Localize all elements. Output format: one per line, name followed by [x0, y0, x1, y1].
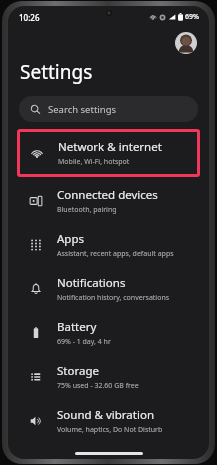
button[interactable]: Notifications — [16, 267, 201, 311]
button[interactable]: Sound & vibration — [16, 399, 201, 443]
staticText: Battery — [57, 319, 97, 335]
staticText: Search settings — [48, 103, 117, 116]
button[interactable]: Network & internet — [17, 129, 200, 177]
staticText: 75% used - 32.60 GB free — [57, 381, 139, 391]
staticText: Network & internet — [58, 139, 162, 155]
staticText: Notification history, conversations — [57, 293, 170, 303]
staticText: Notifications — [57, 275, 126, 291]
button[interactable]: Connected devices — [16, 179, 201, 223]
staticText: 69% - 1 day, 4 hr — [57, 337, 111, 347]
button[interactable]: Account — [175, 32, 197, 54]
button[interactable]: Battery — [16, 311, 201, 355]
staticText: Bluetooth, pairing — [57, 205, 117, 215]
staticText: Connected devices — [57, 187, 158, 203]
staticText: 69% — [185, 12, 199, 22]
staticText: Volume, haptics, Do Not Disturb — [57, 425, 163, 435]
staticText: 10:26 — [19, 12, 40, 23]
staticText: Storage — [57, 363, 99, 379]
staticText: Settings — [20, 59, 93, 85]
button[interactable]: Search settings — [19, 96, 198, 122]
staticText: Mobile, Wi-Fi, hotspot — [58, 157, 130, 167]
button[interactable]: Storage — [16, 355, 201, 399]
button[interactable]: Apps — [16, 223, 201, 267]
staticText: Apps — [57, 231, 85, 247]
staticText: Sound & vibration — [57, 407, 154, 423]
staticText: Assistant, recent apps, default apps — [57, 249, 174, 259]
